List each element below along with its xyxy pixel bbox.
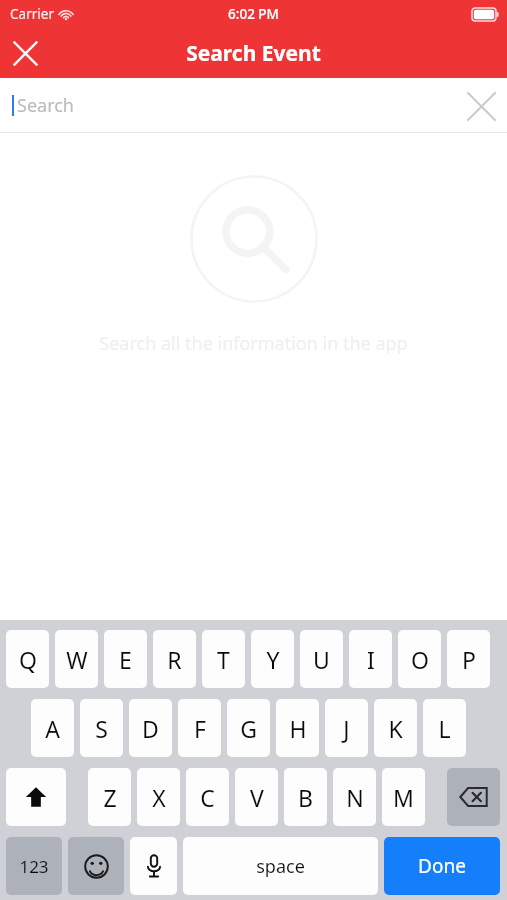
staticText: X <box>152 782 166 813</box>
staticText: T <box>217 644 230 675</box>
staticText: J <box>343 713 350 744</box>
button[interactable]: K <box>374 699 417 757</box>
staticText: K <box>388 713 403 744</box>
staticText: N <box>346 782 364 813</box>
button[interactable]: H <box>276 699 319 757</box>
button[interactable]: Emoji <box>68 837 124 895</box>
staticText: H <box>289 713 307 744</box>
staticText: G <box>240 713 257 744</box>
button[interactable]: space <box>183 837 378 895</box>
staticText: Y <box>266 644 280 675</box>
staticText: A <box>45 713 60 744</box>
staticText: C <box>200 782 215 813</box>
staticText: Search Event <box>186 39 321 68</box>
button[interactable]: Clear search <box>455 80 507 132</box>
button[interactable]: J <box>325 699 368 757</box>
button[interactable]: Done <box>384 837 500 895</box>
button[interactable]: 123 <box>6 837 62 895</box>
button[interactable]: Close <box>0 28 50 78</box>
button[interactable]: Dictation <box>130 837 177 895</box>
staticText: 123 <box>19 855 49 878</box>
button[interactable]: P <box>447 630 490 688</box>
staticText: Search <box>17 93 74 118</box>
button[interactable]: F <box>178 699 221 757</box>
button[interactable]: S <box>80 699 123 757</box>
staticText: Z <box>103 782 117 813</box>
staticText: Carrier <box>10 5 54 23</box>
button[interactable]: G <box>227 699 270 757</box>
button[interactable]: M <box>382 768 425 826</box>
staticText: D <box>142 713 159 744</box>
button[interactable]: V <box>235 768 278 826</box>
button[interactable]: L <box>423 699 466 757</box>
button[interactable]: Y <box>251 630 294 688</box>
staticText: F <box>194 713 206 744</box>
staticText: Search all the information in the app <box>99 331 408 356</box>
staticText: S <box>95 713 108 744</box>
staticText: L <box>438 713 451 744</box>
button[interactable]: Backspace <box>447 768 500 826</box>
staticText: B <box>298 782 313 813</box>
button[interactable]: Z <box>88 768 131 826</box>
staticText: R <box>167 644 182 675</box>
staticText: V <box>250 782 264 813</box>
staticText: W <box>66 644 88 675</box>
button[interactable]: U <box>300 630 343 688</box>
staticText: space <box>256 854 305 879</box>
button[interactable]: D <box>129 699 172 757</box>
button[interactable]: X <box>137 768 180 826</box>
button[interactable]: B <box>284 768 327 826</box>
staticText: Q <box>19 644 37 675</box>
staticText: U <box>313 644 330 675</box>
button[interactable]: O <box>398 630 441 688</box>
staticText: I <box>367 644 375 675</box>
staticText: 6:02 PM <box>228 5 279 23</box>
staticText: O <box>411 644 429 675</box>
button[interactable]: Search <box>0 78 507 133</box>
button[interactable]: R <box>153 630 196 688</box>
staticText: E <box>119 644 132 675</box>
button[interactable]: Q <box>6 630 49 688</box>
staticText: Done <box>418 853 466 879</box>
button[interactable]: N <box>333 768 376 826</box>
button[interactable]: I <box>349 630 392 688</box>
button[interactable]: W <box>55 630 98 688</box>
button[interactable]: A <box>31 699 74 757</box>
button[interactable]: E <box>104 630 147 688</box>
button[interactable]: T <box>202 630 245 688</box>
staticText: M <box>393 782 414 813</box>
button[interactable]: C <box>186 768 229 826</box>
button[interactable]: Shift <box>6 768 66 826</box>
staticText: P <box>462 644 476 675</box>
